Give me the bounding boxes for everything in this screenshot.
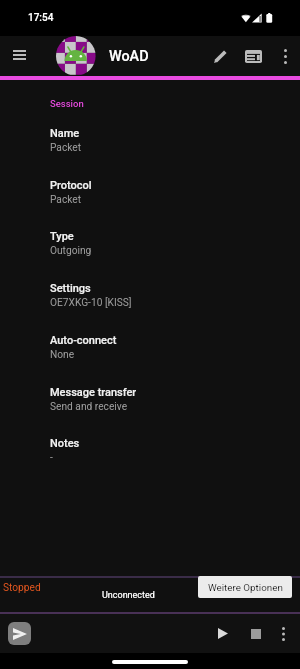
button[interactable]: More options [268, 614, 298, 653]
button[interactable]: Stop [241, 614, 271, 653]
button[interactable]: Edit [204, 40, 236, 72]
staticText: Unconnected [102, 590, 155, 601]
staticText: Type [50, 230, 74, 243]
staticText: Packet [50, 142, 82, 154]
staticText: None [50, 349, 75, 361]
button[interactable]: More options [269, 40, 300, 72]
staticText: Send and receive [50, 401, 128, 413]
staticText: Weitere Optionen [208, 582, 283, 593]
staticText: Name [50, 127, 80, 140]
button[interactable]: Toggle layout [237, 40, 269, 72]
button[interactable]: Notes [0, 437, 300, 467]
staticText: OE7XKG-10 [KISS] [50, 297, 132, 309]
staticText: Session [50, 98, 84, 109]
staticText: Message transfer [50, 386, 137, 399]
staticText: Protocol [50, 179, 92, 192]
button[interactable]: Send [8, 622, 31, 645]
staticText: Outgoing [50, 245, 92, 257]
button[interactable]: Start [208, 614, 238, 653]
staticText: Notes [50, 437, 80, 450]
button[interactable]: Navigation drawer [0, 36, 38, 74]
button[interactable]: Type [0, 230, 300, 260]
staticText: WoAD [109, 48, 149, 65]
staticText: - [50, 452, 53, 464]
staticText: Packet [50, 194, 82, 206]
button[interactable]: Name [0, 127, 300, 157]
button[interactable]: Settings [0, 282, 300, 312]
button[interactable]: Message transfer [0, 386, 300, 416]
button[interactable]: Auto-connect [0, 334, 300, 364]
staticText: Settings [50, 282, 91, 295]
staticText: Stopped [3, 582, 41, 594]
button[interactable]: Weitere Optionen [198, 576, 292, 598]
staticText: Auto-connect [50, 334, 117, 347]
button[interactable]: Protocol [0, 179, 300, 209]
staticText: 17:54 [28, 12, 54, 24]
